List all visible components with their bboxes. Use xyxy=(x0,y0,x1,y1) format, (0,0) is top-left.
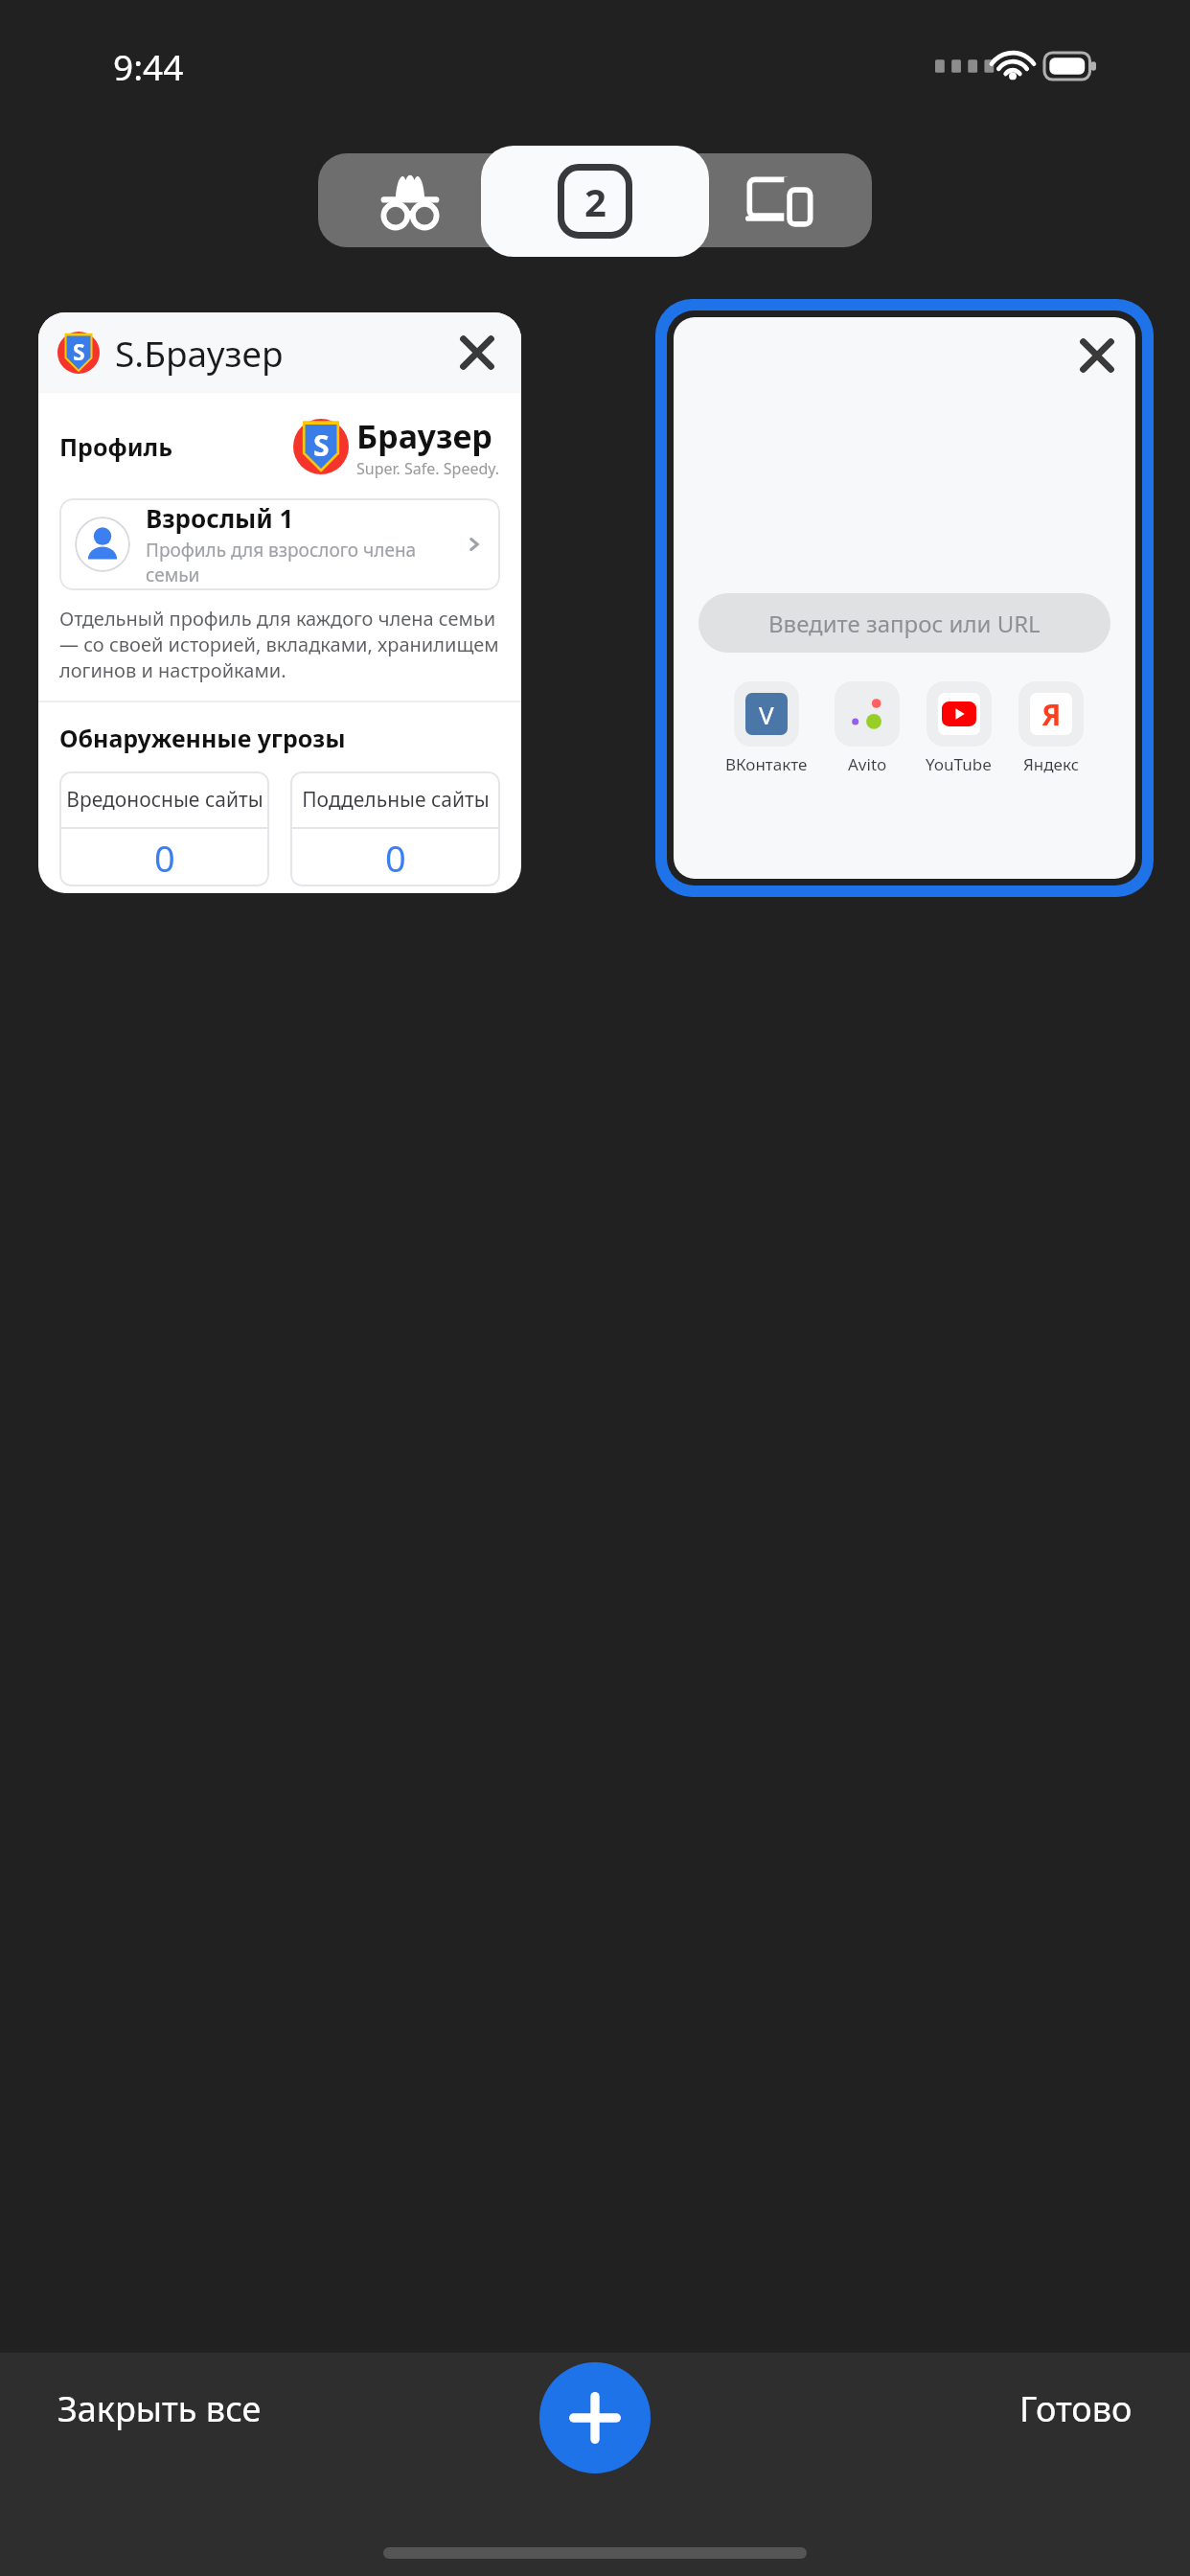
staticText: ВКонтакте xyxy=(725,753,808,775)
staticText: 9:44 xyxy=(113,42,184,90)
button[interactable]: Open tabs: 2 xyxy=(481,146,709,257)
button[interactable]: Incognito tabs xyxy=(318,153,502,247)
staticText: 0 xyxy=(154,833,175,883)
button[interactable]: Close tab xyxy=(452,328,502,378)
staticText: Вредоносные сайты xyxy=(66,786,263,814)
staticText: Avito xyxy=(848,753,887,775)
staticText: 2 xyxy=(584,175,606,227)
button[interactable]: Взрослый 1 xyxy=(59,498,500,590)
button[interactable]: Close tab xyxy=(1072,331,1122,380)
staticText: S.Браузер xyxy=(115,329,452,377)
staticText: Закрыть все xyxy=(57,2385,262,2432)
button[interactable]: New tab xyxy=(539,2362,651,2473)
button[interactable]: Вредоносные сайты xyxy=(59,771,269,886)
button[interactable]: V xyxy=(725,681,808,775)
button[interactable]: S xyxy=(38,312,521,893)
staticText: Super. Safe. Speedy. xyxy=(356,458,500,479)
staticText: 0 xyxy=(385,833,406,883)
staticText: Я xyxy=(1041,695,1062,734)
staticText: V xyxy=(759,698,774,731)
staticText: Отдельный профиль для каждого члена семь… xyxy=(59,606,500,683)
staticText: S xyxy=(73,337,85,367)
button[interactable]: Close tab xyxy=(674,317,1135,879)
staticText: Профиль xyxy=(59,430,293,463)
staticText: Взрослый 1 xyxy=(146,501,294,535)
button[interactable]: Avito xyxy=(835,681,900,775)
button[interactable]: Поддельные сайты xyxy=(290,771,500,886)
staticText: Введите запрос или URL xyxy=(768,608,1041,639)
button[interactable]: Я xyxy=(1018,681,1084,775)
button[interactable]: Devices xyxy=(687,153,872,247)
button[interactable]: Готово xyxy=(981,2362,1171,2455)
staticText: Поддельные сайты xyxy=(302,786,490,814)
staticText: Обнаруженные угрозы xyxy=(59,722,346,754)
button[interactable]: Введите запрос или URL xyxy=(698,593,1110,653)
button[interactable]: Закрыть все xyxy=(19,2362,300,2455)
staticText: Готово xyxy=(1019,2385,1133,2432)
staticText: Профиль для взрослого члена семьи xyxy=(146,538,464,587)
staticText: Яндекс xyxy=(1023,753,1080,775)
staticText: Браузер xyxy=(356,414,492,458)
staticText: YouTube xyxy=(926,753,992,775)
button[interactable]: YouTube xyxy=(926,681,992,775)
staticText: S xyxy=(313,425,330,465)
